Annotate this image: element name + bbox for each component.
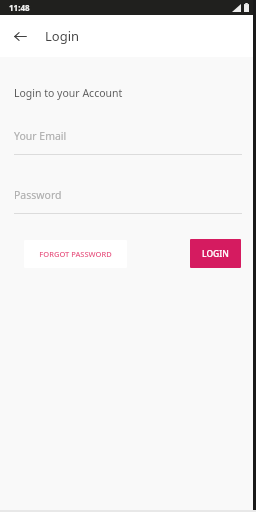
button[interactable]: Your Email [14, 129, 242, 155]
staticText: Password [14, 188, 62, 202]
button[interactable]: Password [14, 188, 242, 214]
staticText: Login to your Account [14, 86, 123, 100]
staticText: Login [45, 27, 80, 45]
staticText: 11:48 [9, 2, 30, 13]
staticText: LOGIN [202, 248, 229, 260]
staticText: Your Email [14, 129, 67, 143]
button[interactable]: Back [7, 23, 34, 50]
staticText: FORGOT PASSWORD [39, 249, 112, 259]
button[interactable]: LOGIN [190, 239, 241, 268]
button[interactable]: FORGOT PASSWORD [24, 240, 127, 268]
